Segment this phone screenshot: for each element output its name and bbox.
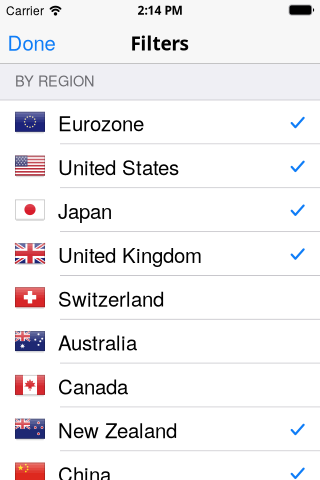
button[interactable]: United Kingdom — [0, 232, 320, 276]
staticText: Done — [7, 27, 55, 56]
staticText: Carrier — [6, 1, 44, 19]
staticText: Filters — [130, 30, 189, 56]
staticText: Eurozone — [58, 108, 144, 137]
staticText: United States — [58, 152, 179, 181]
button[interactable]: Switzerland — [0, 276, 320, 320]
button[interactable]: Canada — [0, 364, 320, 408]
staticText: United Kingdom — [58, 239, 202, 269]
button[interactable]: New Zealand — [0, 408, 320, 451]
staticText: Australia — [58, 327, 137, 356]
staticText: Canada — [58, 371, 128, 400]
staticText: BY REGION — [15, 70, 94, 90]
button[interactable]: United States — [0, 144, 320, 188]
staticText: New Zealand — [58, 415, 177, 444]
staticText: Japan — [58, 196, 112, 225]
staticText: 2:14 PM — [137, 2, 182, 18]
button[interactable]: Australia — [0, 320, 320, 364]
button[interactable]: China — [0, 451, 320, 480]
button[interactable]: Japan — [0, 188, 320, 232]
button[interactable]: Done — [0, 27, 55, 56]
button[interactable]: Eurozone — [0, 101, 320, 144]
staticText: China — [58, 459, 111, 480]
staticText: Switzerland — [58, 283, 164, 312]
